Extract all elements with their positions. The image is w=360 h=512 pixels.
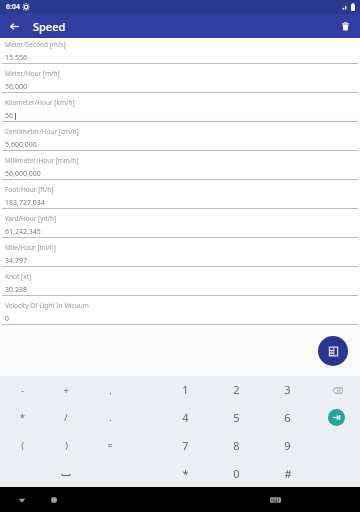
staticText: 6 bbox=[284, 410, 291, 425]
button[interactable]: Meter/Second [m/s] bbox=[0, 38, 360, 67]
button[interactable]: Open calculator bbox=[318, 336, 348, 366]
staticText: = bbox=[107, 439, 113, 451]
staticText: Yard/Hour [yd/h] bbox=[5, 214, 57, 223]
button[interactable]: + bbox=[44, 376, 88, 403]
button[interactable]: # bbox=[262, 459, 313, 487]
button[interactable]: = bbox=[88, 431, 132, 459]
button[interactable]: 3 bbox=[262, 376, 313, 403]
staticText: 4 bbox=[182, 410, 189, 425]
staticText: Millimeter/Hour [mm/h] bbox=[5, 156, 79, 165]
staticText: / bbox=[64, 411, 68, 423]
staticText: Speed bbox=[33, 19, 66, 34]
button[interactable]: Yard/Hour [yd/h] bbox=[0, 212, 360, 241]
staticText: 1 bbox=[182, 382, 189, 397]
staticText: . bbox=[109, 411, 112, 423]
staticText: + bbox=[63, 384, 69, 396]
button[interactable]: 6 bbox=[262, 403, 313, 431]
staticText: , bbox=[109, 384, 112, 396]
button[interactable]: Foot/Hour [ft/h] bbox=[0, 183, 360, 212]
button[interactable]: Back bbox=[14, 492, 30, 508]
staticText: Velocity Of Light In Vacuum bbox=[5, 301, 89, 310]
staticText: 8 bbox=[233, 438, 240, 453]
staticText: 56,000 bbox=[5, 82, 27, 92]
button[interactable]: Delete bbox=[335, 16, 355, 36]
button[interactable]: 8 bbox=[211, 431, 262, 459]
button[interactable]: 7 bbox=[160, 431, 211, 459]
button[interactable]: Millimeter/Hour [mm/h] bbox=[0, 154, 360, 183]
staticText: # bbox=[284, 466, 292, 481]
staticText: Mile/Hour [mi/h] bbox=[5, 243, 56, 252]
button[interactable]: ) bbox=[44, 431, 88, 459]
button[interactable]: Velocity Of Light In Vacuum bbox=[0, 299, 360, 328]
button[interactable]: Home bbox=[46, 492, 62, 508]
button[interactable]: . bbox=[88, 403, 132, 431]
staticText: * bbox=[182, 466, 189, 481]
button[interactable]: 9 bbox=[262, 431, 313, 459]
button[interactable]: Back bbox=[4, 16, 24, 36]
button[interactable]: 5 bbox=[211, 403, 262, 431]
staticText: ) bbox=[65, 439, 68, 451]
button[interactable]: Meter/Hour [m/h] bbox=[0, 67, 360, 96]
staticText: Kilometer/Hour [km/h] bbox=[5, 98, 75, 107]
staticText: 6:04 bbox=[6, 2, 20, 12]
staticText: 56 bbox=[5, 111, 14, 121]
button[interactable]: 4 bbox=[160, 403, 211, 431]
staticText: 61,242.345 bbox=[5, 227, 41, 237]
button[interactable]: Knot [kt] bbox=[0, 270, 360, 299]
staticText: 7 bbox=[182, 438, 189, 453]
staticText: Foot/Hour [ft/h] bbox=[5, 185, 54, 194]
staticText: - bbox=[21, 384, 24, 396]
button[interactable]: Kilometer/Hour [km/h] bbox=[0, 96, 360, 125]
staticText: 5,600,000 bbox=[5, 140, 37, 150]
button[interactable]: / bbox=[44, 403, 88, 431]
button[interactable]: 1 bbox=[160, 376, 211, 403]
button[interactable]: Backspace bbox=[327, 380, 347, 400]
button[interactable]: * bbox=[160, 459, 211, 487]
staticText: 9 bbox=[284, 438, 291, 453]
button[interactable]: Mile/Hour [mi/h] bbox=[0, 241, 360, 270]
button[interactable]: 0 bbox=[211, 459, 262, 487]
button[interactable]: Enter bbox=[328, 409, 345, 426]
staticText: 0 bbox=[5, 314, 10, 324]
staticText: 5 bbox=[233, 410, 240, 425]
staticText: * bbox=[20, 411, 25, 423]
staticText: Meter/Second [m/s] bbox=[5, 40, 66, 49]
staticText: 56,000,000 bbox=[5, 169, 41, 179]
staticText: 0 bbox=[233, 466, 240, 481]
staticText: 2 bbox=[233, 382, 240, 397]
button[interactable]: , bbox=[88, 376, 132, 403]
staticText: 15.556 bbox=[5, 53, 27, 63]
button[interactable]: Centimeter/Hour [cm/h] bbox=[0, 125, 360, 154]
staticText: 34.797 bbox=[5, 256, 27, 266]
staticText: 3 bbox=[284, 382, 291, 397]
button[interactable]: * bbox=[0, 403, 44, 431]
button[interactable]: ( bbox=[0, 431, 44, 459]
staticText: Centimeter/Hour [cm/h] bbox=[5, 127, 79, 136]
button[interactable]: - bbox=[0, 376, 44, 403]
staticText: 183,727.034 bbox=[5, 198, 45, 208]
staticText: 30.238 bbox=[5, 285, 27, 295]
button[interactable] bbox=[44, 459, 88, 487]
button[interactable]: 2 bbox=[211, 376, 262, 403]
staticText: Meter/Hour [m/h] bbox=[5, 69, 60, 78]
staticText: Knot [kt] bbox=[5, 272, 32, 281]
staticText: ( bbox=[21, 439, 24, 451]
button[interactable]: Keyboard bbox=[266, 491, 284, 509]
